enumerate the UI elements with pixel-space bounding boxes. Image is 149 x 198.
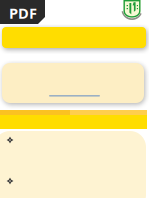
staticText: PDF [9,3,37,23]
